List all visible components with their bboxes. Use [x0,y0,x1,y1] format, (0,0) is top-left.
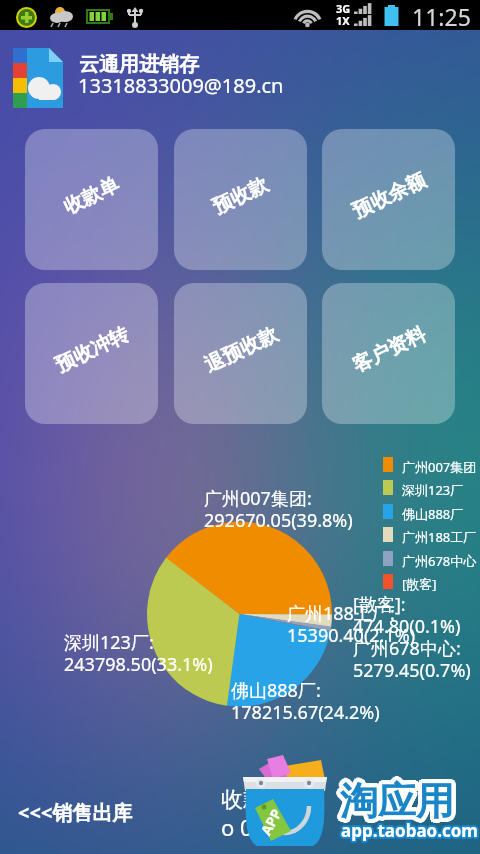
button[interactable]: 客户资料 [322,283,455,424]
staticText: app.taobao.com [341,820,478,843]
staticText: 淘应用 [342,775,456,823]
staticText: app.taobao.com [339,820,476,843]
staticText: app.taobao.com [339,818,476,841]
staticText: 淘应用 [336,778,450,826]
staticText: 广州188工厂: [287,601,395,626]
staticText: 收款单 [59,171,123,219]
staticText: app.taobao.com [340,817,477,840]
staticText: 淘应用 [341,776,455,824]
staticText: 474.80(0.1%) [353,614,461,639]
staticText: 淘应用 [343,776,457,824]
staticText: 淘应用 [340,775,454,823]
staticText: 淘应用 [336,777,450,825]
staticText: 佛山888厂 [402,505,464,523]
staticText: app.taobao.com [340,819,477,842]
staticText: 淘应用 [336,776,450,824]
staticText: 广州678中心: [353,636,461,661]
staticText: 退预收款 [200,321,282,377]
staticText: app.taobao.com [340,820,477,843]
staticText: 淘应用 [341,777,455,825]
staticText: 淘应用 [337,774,451,822]
staticText: app.taobao.com [341,817,478,840]
staticText: 淘应用 [339,780,453,828]
staticText: 淘应用 [340,774,454,822]
staticText: 淘应用 [340,780,454,828]
staticText: 广州007集团: [204,486,312,511]
staticText: 淘应用 [343,779,457,827]
staticText: 淘应用 [337,778,451,826]
staticText: 广州188工厂 [402,528,477,546]
staticText: app.taobao.com [340,821,477,844]
staticText: app.taobao.com [341,821,478,844]
staticText: 243798.50(33.1%) [64,652,213,677]
button[interactable]: 预收冲转 [25,283,158,424]
staticText: 淘应用 [341,779,455,827]
staticText: 淘应用 [338,774,452,822]
staticText: APP [256,805,286,838]
button[interactable]: <<<销售出库 [18,799,133,826]
staticText: 淘应用 [344,777,458,825]
staticText: 淘应用 [344,778,458,826]
staticText: 淘应用 [337,777,451,825]
staticText: 淘应用 [339,774,453,822]
staticText: 淘应用 [338,775,452,823]
staticText: 淘应用 [342,779,456,827]
staticText: 淘应用 [342,776,456,824]
staticText: 预收余额 [348,167,430,223]
staticText: 淘应用 [337,779,451,827]
button[interactable]: 预收款 [174,129,307,270]
staticText: 淘应用 [339,776,453,824]
staticText: 淘应用 [337,776,451,824]
staticText: 淘应用 [339,778,453,826]
staticText: 淘应用 [338,776,452,824]
staticText: 预收冲转 [51,321,133,377]
staticText: 淘应用 [342,777,456,825]
staticText: app.taobao.com [342,820,479,843]
staticText: 广州007集团 [402,458,477,476]
staticText: 淘应用 [341,778,455,826]
staticText: 淘应用 [341,780,455,828]
staticText: 淘应用 [341,781,455,829]
staticText: 淘应用 [344,776,458,824]
staticText: 广州678中心 [402,552,477,570]
button[interactable]: 收款单 [25,129,158,270]
staticText: 收款单 [221,786,287,814]
staticText: 淘应用 [339,779,453,827]
staticText: app.taobao.com [343,819,480,842]
staticText: 淘应用 [341,775,455,823]
staticText: app.taobao.com [342,817,479,840]
staticText: 淘应用 [339,773,453,821]
staticText: 淘应用 [340,776,454,824]
staticText: 178215.67(24.2%) [231,700,380,725]
staticText: 淘应用 [340,779,454,827]
staticText: 淘应用 [340,777,454,825]
staticText: 淘应用 [339,781,453,829]
staticText: app.taobao.com [341,818,478,841]
staticText: 淘应用 [343,780,457,828]
button[interactable]: 退预收款 [174,283,307,424]
staticText: 预收款 [208,171,272,219]
staticText: 淘应用 [338,778,452,826]
staticText: 淘应用 [338,780,452,828]
staticText: app.taobao.com [341,819,478,842]
staticText: 深圳123厂 [402,481,464,499]
staticText: 5279.45(0.7%) [353,658,471,683]
staticText: [散客] [402,575,437,593]
button[interactable]: 云通用进销存 [0,30,480,114]
staticText: 11:25 [412,1,471,31]
staticText: 淘应用 [343,775,457,823]
staticText: 淘应用 [340,781,454,829]
staticText: 淘应用 [340,773,454,821]
staticText: app.taobao.com [342,819,479,842]
staticText: 淘应用 [341,774,455,822]
staticText: 淘应用 [342,774,456,822]
button[interactable]: 预收余额 [322,129,455,270]
button[interactable]: app.taobao.com advertisement [235,755,480,854]
staticText: 292670.05(39.8%) [204,508,353,533]
staticText: 3G [336,1,351,16]
staticText: 淘应用 [338,779,452,827]
staticText: 13318833009@189.cn [78,72,284,99]
staticText: app.taobao.com [343,818,480,841]
staticText: 淘应用 [337,780,451,828]
staticText: 淘应用 [339,775,453,823]
